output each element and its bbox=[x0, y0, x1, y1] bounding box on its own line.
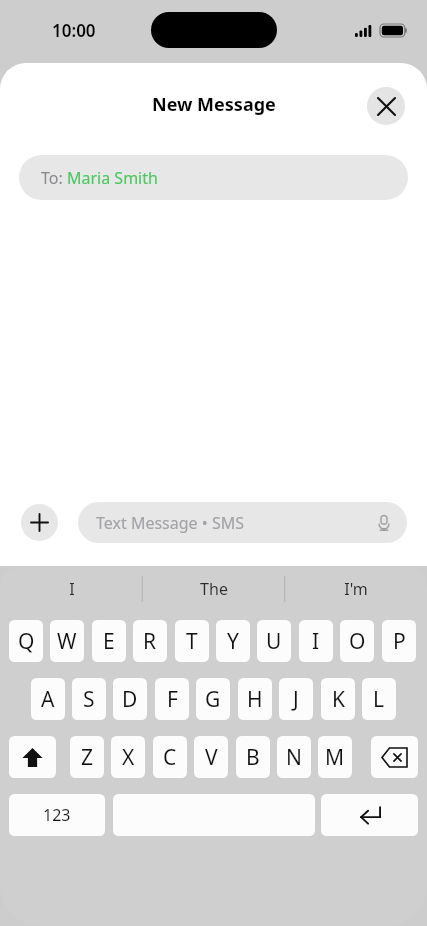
button[interactable]: Q bbox=[9, 620, 43, 662]
button[interactable]: Text Message • SMS bbox=[78, 502, 407, 543]
staticText: 123 bbox=[43, 804, 71, 826]
staticText: I bbox=[69, 578, 75, 600]
staticText: The bbox=[200, 578, 228, 600]
staticText: V bbox=[205, 743, 218, 772]
button[interactable]: K bbox=[321, 678, 355, 720]
staticText: To: bbox=[41, 167, 67, 189]
staticText: P bbox=[393, 627, 406, 656]
button[interactable]: G bbox=[196, 678, 230, 720]
staticText: T bbox=[186, 627, 198, 656]
button[interactable]: B bbox=[236, 736, 270, 778]
button[interactable]: A bbox=[31, 678, 65, 720]
button[interactable]: Z bbox=[70, 736, 104, 778]
button[interactable]: H bbox=[238, 678, 272, 720]
staticText: Maria Smith bbox=[67, 167, 158, 189]
button[interactable]: W bbox=[50, 620, 84, 662]
staticText: E bbox=[103, 627, 115, 656]
button[interactable]: I'm bbox=[285, 566, 427, 612]
button[interactable]: R bbox=[133, 620, 167, 662]
staticText: Z bbox=[81, 743, 94, 772]
button[interactable]: The bbox=[143, 566, 285, 612]
button[interactable]: Dictate bbox=[373, 512, 395, 534]
other: Return bbox=[358, 806, 382, 824]
staticText: N bbox=[286, 743, 302, 772]
button[interactable]: J bbox=[279, 678, 313, 720]
staticText: Q bbox=[18, 627, 35, 656]
button[interactable]: E bbox=[92, 620, 126, 662]
staticText: I bbox=[312, 627, 320, 656]
button[interactable]: 123 bbox=[9, 794, 105, 836]
staticText: X bbox=[122, 743, 135, 772]
staticText: 10:00 bbox=[52, 19, 96, 42]
staticText: B bbox=[246, 743, 260, 772]
button[interactable]: Add attachment bbox=[21, 504, 58, 541]
other: Backspace bbox=[382, 748, 407, 767]
button[interactable]: C bbox=[153, 736, 187, 778]
button[interactable]: X bbox=[111, 736, 145, 778]
button[interactable]: L bbox=[362, 678, 396, 720]
button[interactable]: D bbox=[113, 678, 147, 720]
button[interactable]: F bbox=[155, 678, 189, 720]
button[interactable]: M bbox=[318, 736, 352, 778]
staticText: H bbox=[247, 685, 263, 714]
button[interactable]: Backspace bbox=[371, 736, 418, 778]
other: Shift bbox=[22, 747, 43, 768]
staticText: O bbox=[349, 627, 366, 656]
button[interactable]: To: bbox=[19, 155, 408, 200]
button[interactable]: I bbox=[0, 566, 143, 612]
button[interactable]: S bbox=[72, 678, 106, 720]
staticText: U bbox=[266, 627, 282, 656]
staticText: W bbox=[57, 627, 77, 656]
staticText: S bbox=[83, 685, 95, 714]
staticText: L bbox=[373, 685, 385, 714]
button[interactable]: P bbox=[382, 620, 416, 662]
staticText: F bbox=[167, 685, 178, 714]
button[interactable]: Shift bbox=[9, 736, 56, 778]
staticText: New Message bbox=[152, 92, 276, 117]
staticText: M bbox=[325, 743, 345, 772]
button[interactable]: Return bbox=[321, 794, 418, 836]
staticText: K bbox=[332, 685, 345, 714]
staticText: J bbox=[293, 685, 299, 714]
button[interactable]: T bbox=[175, 620, 209, 662]
button[interactable]: O bbox=[340, 620, 374, 662]
button[interactable]: Y bbox=[216, 620, 250, 662]
staticText: Y bbox=[227, 627, 239, 656]
button[interactable]: Close bbox=[367, 87, 405, 125]
button[interactable]: N bbox=[277, 736, 311, 778]
button[interactable]: I bbox=[299, 620, 333, 662]
button[interactable]: V bbox=[194, 736, 228, 778]
staticText: G bbox=[205, 685, 221, 714]
staticText: R bbox=[143, 627, 157, 656]
staticText: C bbox=[163, 743, 177, 772]
staticText: I'm bbox=[344, 578, 368, 600]
staticText: Text Message • SMS bbox=[96, 512, 245, 534]
button[interactable]: U bbox=[257, 620, 291, 662]
staticText: A bbox=[41, 685, 55, 714]
staticText: D bbox=[122, 685, 138, 714]
